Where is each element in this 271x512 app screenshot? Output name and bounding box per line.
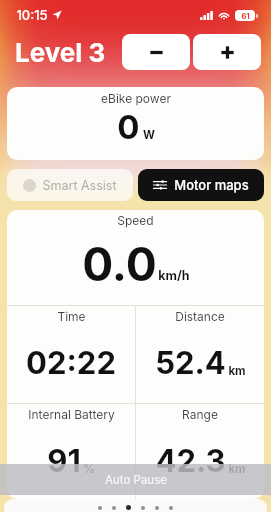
staticText: eBike power [101, 91, 171, 106]
staticText: Speed [117, 213, 154, 228]
staticText: 02:22 [26, 344, 116, 382]
staticText: Internal Battery [28, 407, 115, 422]
button[interactable]: Distance [136, 306, 264, 403]
button[interactable]: Decrease assist level [122, 34, 190, 70]
staticText: Auto Pause [105, 473, 167, 487]
staticText: 10:15 [16, 7, 48, 23]
staticText: Time [57, 309, 86, 324]
staticText: km [228, 364, 246, 378]
staticText: 0 [117, 107, 140, 147]
staticText: Smart Assist [42, 178, 117, 193]
button[interactable]: Motor maps [138, 169, 264, 201]
staticText: Distance [175, 309, 225, 324]
button[interactable]: eBike power [7, 87, 264, 160]
staticText: % [83, 462, 95, 476]
staticText: Level 3 [15, 37, 106, 68]
staticText: 52.4 [155, 344, 226, 382]
staticText: 0.0 [82, 236, 157, 292]
button[interactable]: Smart Assist [7, 169, 133, 201]
button[interactable]: Increase assist level [193, 34, 261, 70]
staticText: 61 [241, 11, 250, 21]
staticText: Range [182, 407, 218, 422]
staticText: Motor maps [174, 177, 249, 193]
button[interactable]: Internal Battery [7, 404, 135, 499]
staticText: 42.3 [155, 442, 226, 480]
button[interactable]: Range [136, 404, 264, 499]
staticText: W [143, 128, 155, 142]
staticText: 91 [47, 442, 81, 480]
staticText: km [228, 462, 246, 476]
button[interactable]: Time [7, 306, 135, 403]
staticText: km/h [158, 268, 190, 283]
